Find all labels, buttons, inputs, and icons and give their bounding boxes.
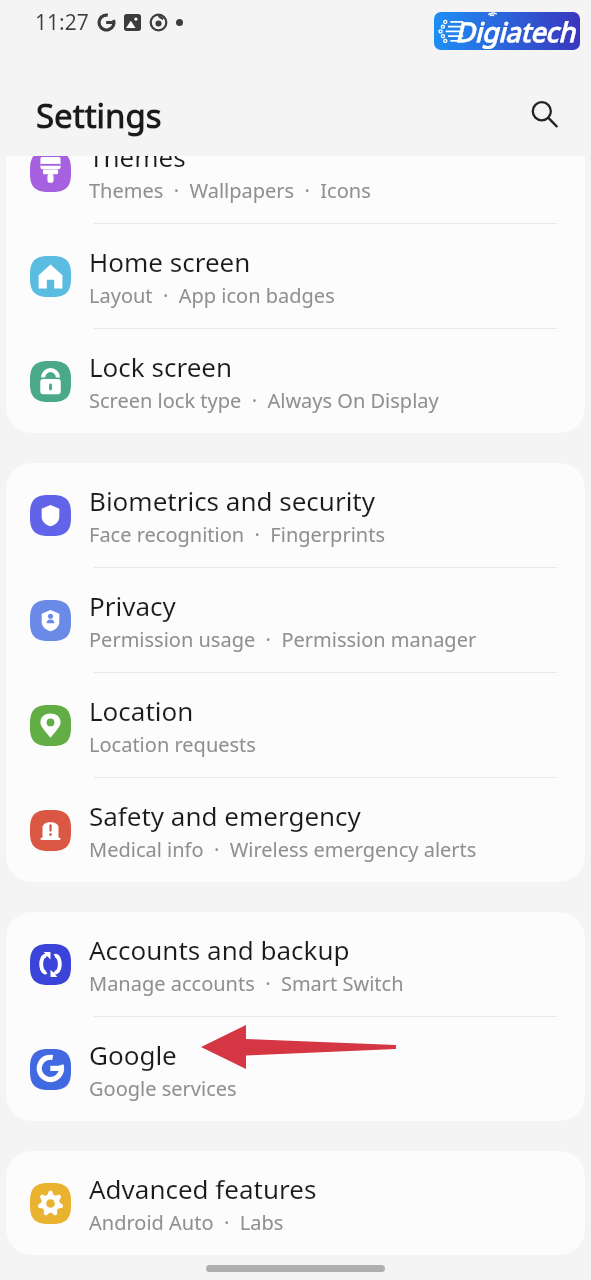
staticText: Manage accounts · Smart Switch (89, 970, 404, 997)
button[interactable]: Google (6, 1017, 585, 1121)
staticText: Safety and emergency (89, 798, 361, 833)
staticText: Google services (89, 1075, 237, 1102)
button[interactable]: Privacy (6, 568, 585, 672)
staticText: Medical info · Wireless emergency alerts (89, 836, 477, 863)
staticText: Location (89, 693, 194, 728)
button[interactable]: Home screen (6, 224, 585, 328)
staticText: Settings (36, 93, 162, 138)
staticText: Lock screen (89, 349, 233, 384)
staticText: Advanced features (89, 1171, 317, 1206)
staticText: Digiatech (455, 13, 576, 50)
staticText: Themes · Wallpapers · Icons (89, 177, 371, 204)
staticText: Face recognition · Fingerprints (89, 521, 385, 548)
staticText: Google (89, 1037, 177, 1072)
button[interactable]: Themes (6, 119, 585, 223)
button[interactable]: Location (6, 673, 585, 777)
button[interactable]: Search (521, 91, 567, 137)
button[interactable]: Advanced features (6, 1151, 585, 1255)
staticText: Home screen (89, 244, 251, 279)
button[interactable]: Biometrics and security (6, 463, 585, 567)
staticText: Themes (89, 139, 186, 174)
staticText: Accounts and backup (89, 932, 350, 967)
button[interactable]: Safety and emergency (6, 778, 585, 882)
staticText: Location requests (89, 731, 256, 758)
staticText: Screen lock type · Always On Display (89, 387, 439, 414)
staticText: Android Auto · Labs (89, 1209, 284, 1236)
staticText: Privacy (89, 588, 176, 623)
staticText: Layout · App icon badges (89, 282, 335, 309)
staticText: Biometrics and security (89, 483, 376, 518)
button[interactable]: Lock screen (6, 329, 585, 433)
staticText: 11:27 (35, 8, 89, 37)
staticText: Permission usage · Permission manager (89, 626, 477, 653)
button[interactable]: Accounts and backup (6, 912, 585, 1016)
